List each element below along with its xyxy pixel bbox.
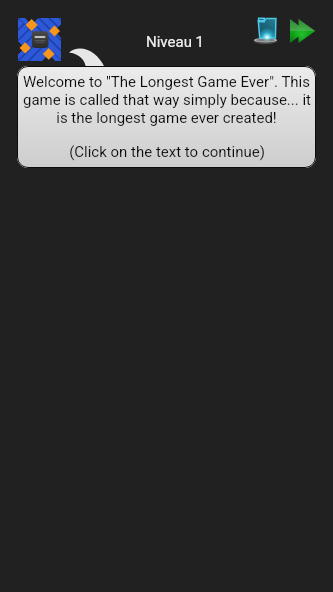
button[interactable]: Save game <box>252 8 288 44</box>
staticText: Welcome to "The Longest Game Ever". This <box>23 73 310 91</box>
staticText: Niveau 1 <box>146 33 205 51</box>
staticText: game is called that way simply because..… <box>23 91 311 109</box>
staticText: is the longest game ever created! <box>56 109 277 127</box>
button[interactable]: Character avatar <box>18 18 61 61</box>
button[interactable]: Fast forward <box>288 14 322 48</box>
staticText: (Click on the text to continue) <box>69 143 265 161</box>
button[interactable]: Welcome to "The Longest Game Ever". This <box>17 66 316 168</box>
